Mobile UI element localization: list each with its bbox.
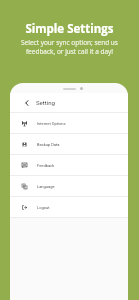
staticText: Internet Options xyxy=(37,121,66,126)
staticText: Setting xyxy=(36,99,55,106)
button[interactable]: Back xyxy=(23,99,31,107)
button[interactable]: Feedback xyxy=(10,155,128,176)
staticText: Backup Data xyxy=(37,142,60,147)
staticText: Logout xyxy=(37,205,50,210)
staticText: Select your sync option; send us feedbac… xyxy=(21,38,118,56)
button[interactable]: Logout xyxy=(10,197,128,218)
staticText: Simple Settings xyxy=(25,21,114,37)
staticText: Feedback xyxy=(37,163,55,168)
button[interactable]: Language xyxy=(10,176,128,197)
button[interactable]: Internet Options xyxy=(10,113,128,134)
button[interactable]: Backup Data xyxy=(10,134,128,155)
staticText: Language xyxy=(37,184,55,189)
